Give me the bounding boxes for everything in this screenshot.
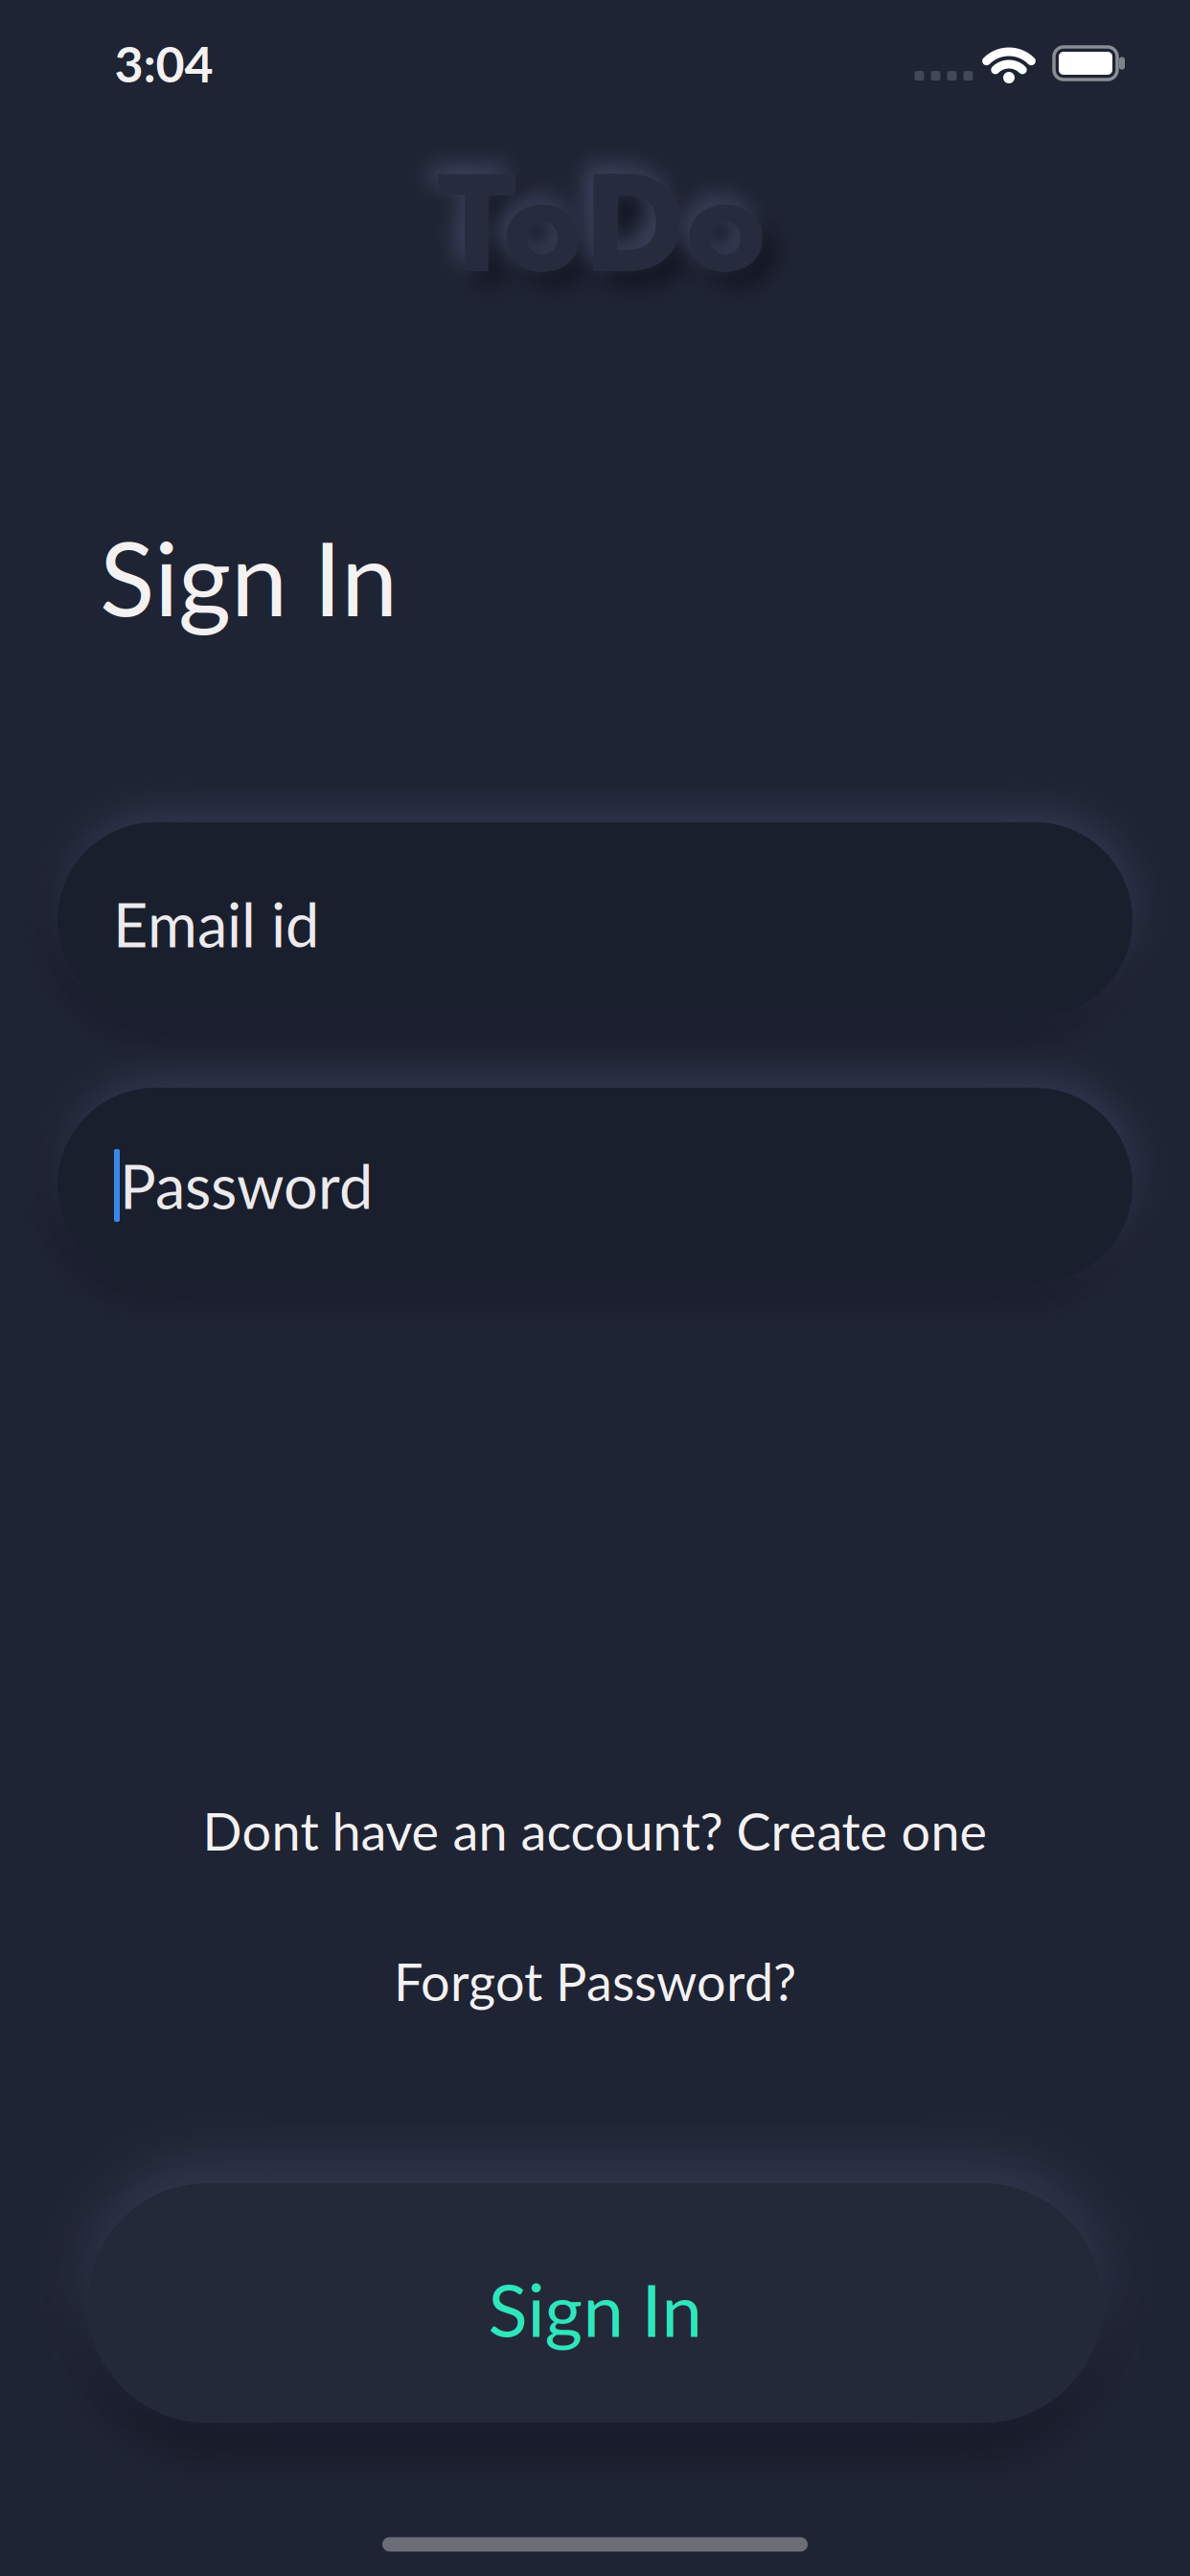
staticText: Password xyxy=(120,1149,373,1222)
staticText: ToDo xyxy=(437,122,766,323)
staticText: Dont have an account? Create one xyxy=(203,1799,987,1861)
button[interactable]: Sign In xyxy=(88,2183,1102,2423)
staticText: Forgot Password? xyxy=(394,1950,796,2012)
staticText: Sign In xyxy=(100,516,398,638)
button[interactable]: Forgot Password? xyxy=(394,1950,796,2012)
staticText: Sign In xyxy=(488,2265,702,2352)
button[interactable]: Email id xyxy=(57,822,1133,1018)
button[interactable]: Password xyxy=(57,1088,1133,1283)
staticText: 3:04 xyxy=(114,33,213,93)
staticText: ToDo xyxy=(437,122,766,323)
staticText: Email id xyxy=(113,888,319,960)
button[interactable]: Dont have an account? Create one xyxy=(203,1799,987,1861)
